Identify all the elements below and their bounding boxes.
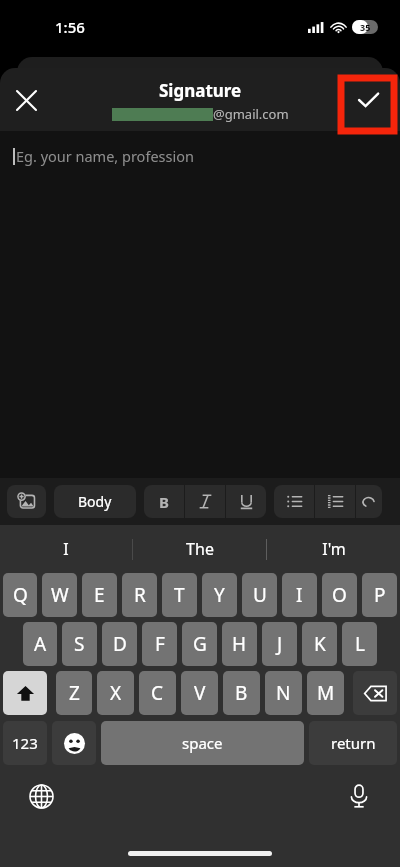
button[interactable]: E — [82, 573, 117, 617]
button[interactable]: space — [101, 721, 304, 765]
button[interactable]: M — [307, 671, 344, 715]
button[interactable]: Emoji — [52, 721, 96, 765]
button[interactable]: Underline — [226, 485, 266, 518]
staticText: N — [276, 680, 291, 706]
staticText: return — [331, 733, 376, 753]
staticText: Y — [214, 582, 225, 608]
button[interactable]: X — [97, 671, 134, 715]
button[interactable]: Y — [202, 573, 237, 617]
staticText: S — [74, 631, 85, 657]
button[interactable]: S — [62, 622, 97, 666]
button[interactable]: V — [181, 671, 218, 715]
staticText: Z — [69, 680, 80, 706]
button[interactable]: J — [262, 622, 297, 666]
button[interactable]: Voice input — [342, 779, 376, 813]
staticText: 35 — [360, 21, 371, 33]
staticText: A — [34, 631, 47, 657]
button[interactable]: Close — [0, 74, 52, 126]
staticText: @gmail.com — [213, 105, 289, 123]
button[interactable]: B — [223, 671, 260, 715]
button[interactable]: I'm — [267, 525, 400, 573]
button[interactable]: Shift — [3, 671, 47, 715]
staticText: Q — [13, 582, 28, 608]
staticText: K — [314, 631, 326, 657]
button[interactable]: Bold — [144, 485, 184, 518]
staticText: Signature — [159, 79, 242, 102]
staticText: Eg. your name, profession — [16, 146, 194, 166]
button[interactable]: W — [42, 573, 77, 617]
staticText: The — [186, 538, 214, 560]
staticText: L — [355, 631, 365, 657]
button[interactable]: 123 — [3, 721, 47, 765]
button[interactable]: P — [362, 573, 397, 617]
staticText: B — [235, 680, 248, 706]
staticText: P — [374, 582, 386, 608]
button[interactable]: return — [309, 721, 397, 765]
staticText: space — [182, 733, 223, 753]
button[interactable]: Italic — [185, 485, 225, 518]
staticText: X — [110, 680, 122, 706]
staticText: U — [253, 582, 267, 608]
staticText: 123 — [12, 733, 38, 753]
staticText: O — [332, 582, 347, 608]
button[interactable]: N — [265, 671, 302, 715]
staticText: I — [63, 538, 69, 560]
staticText: G — [193, 631, 207, 657]
button[interactable]: L — [342, 622, 377, 666]
staticText: V — [194, 680, 206, 706]
button[interactable]: I — [0, 525, 132, 573]
button[interactable]: T — [162, 573, 197, 617]
staticText: H — [232, 631, 247, 657]
staticText: I — [296, 582, 303, 608]
button[interactable]: Z — [56, 671, 92, 715]
button[interactable]: D — [102, 622, 137, 666]
staticText: D — [113, 631, 127, 657]
button[interactable]: R — [122, 573, 157, 617]
button[interactable]: The — [133, 525, 266, 573]
button[interactable]: K — [302, 622, 337, 666]
button[interactable]: H — [222, 622, 257, 666]
staticText: W — [51, 582, 69, 608]
staticText: 1:56 — [55, 17, 85, 37]
staticText: B — [159, 492, 169, 512]
staticText: Body — [78, 492, 112, 511]
button[interactable]: Indent — [356, 485, 382, 518]
button[interactable]: I — [282, 573, 317, 617]
button[interactable]: F — [142, 622, 177, 666]
button[interactable]: Body — [54, 485, 136, 518]
staticText: I'm — [322, 538, 346, 560]
button[interactable]: Q — [3, 573, 37, 617]
button[interactable]: O — [322, 573, 357, 617]
staticText: T — [174, 582, 185, 608]
staticText: E — [94, 582, 105, 608]
staticText: R — [134, 582, 146, 608]
button[interactable]: Bulleted list — [274, 485, 314, 518]
button[interactable]: Numbered list — [315, 485, 355, 518]
button[interactable]: G — [182, 622, 217, 666]
button[interactable]: A — [23, 622, 57, 666]
button[interactable]: C — [139, 671, 176, 715]
button[interactable]: Insert image — [7, 485, 46, 518]
button[interactable]: U — [242, 573, 277, 617]
button[interactable]: Save signature — [342, 74, 394, 126]
staticText: M — [317, 680, 335, 706]
button[interactable]: Backspace — [353, 671, 397, 715]
staticText: J — [277, 631, 283, 657]
staticText: C — [151, 680, 164, 706]
button[interactable]: Change keyboard — [24, 779, 58, 813]
staticText: F — [155, 631, 165, 657]
